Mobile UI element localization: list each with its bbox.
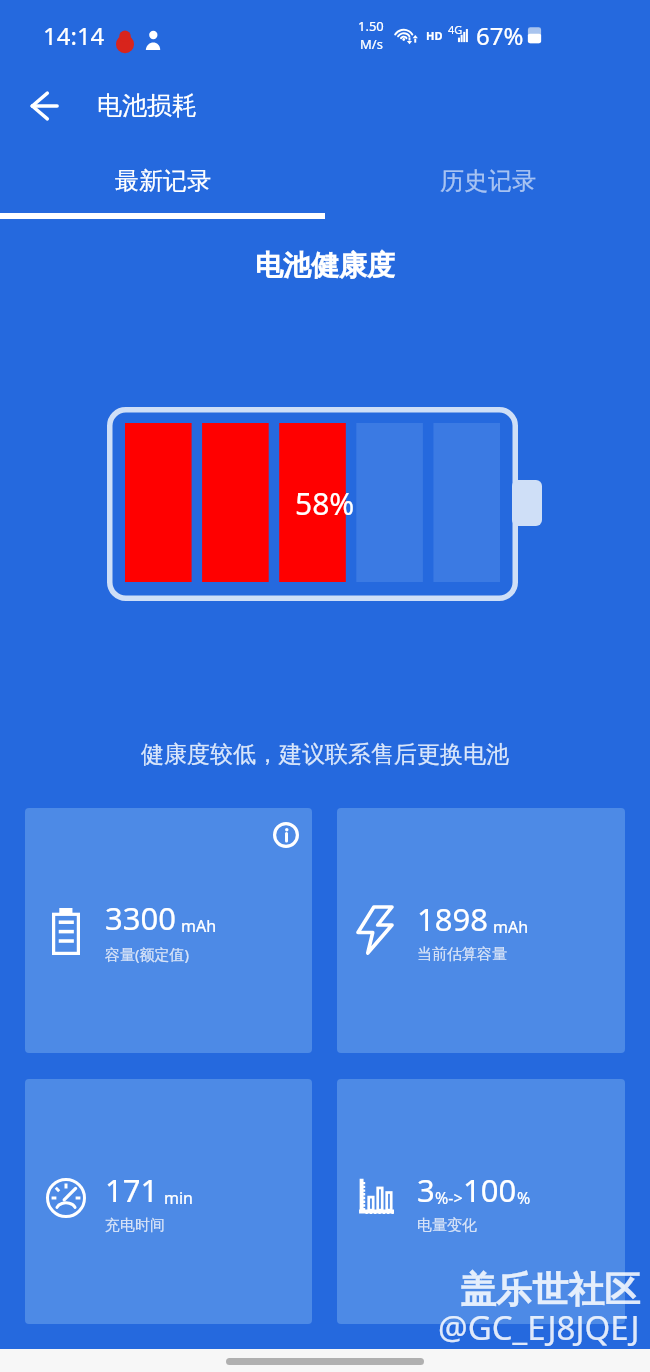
staticText: 健康度较低，建议联系售后更换电池 <box>0 740 650 769</box>
staticText: 1.50 <box>358 17 384 35</box>
button[interactable]: 1898 <box>337 808 625 1053</box>
staticText: %-> <box>435 1187 463 1209</box>
staticText: % <box>517 1187 531 1209</box>
staticText: 电池损耗 <box>97 90 197 121</box>
button[interactable]: 171 <box>25 1079 312 1324</box>
staticText: 最新记录 <box>115 166 211 196</box>
staticText: @GC_EJ8JQEJ <box>438 1305 640 1350</box>
button[interactable]: Back <box>16 78 72 134</box>
staticText: min <box>164 1187 193 1209</box>
staticText: 58% <box>295 483 355 524</box>
staticText: 1898 <box>417 898 488 940</box>
button[interactable]: 最新记录 <box>0 142 325 219</box>
button[interactable]: 3 <box>337 1079 625 1324</box>
staticText: M/s <box>360 35 383 53</box>
staticText: 充电时间 <box>105 1216 165 1235</box>
staticText: HD <box>426 28 443 43</box>
staticText: mAh <box>493 916 529 938</box>
staticText: mAh <box>181 915 217 937</box>
staticText: 盖乐世社区 <box>460 1267 640 1312</box>
staticText: 容量(额定值) <box>105 944 190 964</box>
button[interactable]: Info <box>25 808 312 1053</box>
staticText: 3 <box>417 1169 435 1211</box>
staticText: 当前估算容量 <box>417 945 507 964</box>
staticText: 电量变化 <box>417 1216 477 1235</box>
button[interactable]: 历史记录 <box>325 142 650 219</box>
button[interactable]: Info <box>273 822 299 848</box>
staticText: 100 <box>463 1169 517 1211</box>
staticText: 4G <box>448 22 463 37</box>
staticText: 14:14 <box>43 19 105 52</box>
staticText: 67% <box>476 19 524 52</box>
staticText: 历史记录 <box>440 166 536 196</box>
staticText: 3300 <box>105 897 176 939</box>
staticText: 171 <box>105 1169 159 1211</box>
staticText: 电池健康度 <box>0 248 650 283</box>
